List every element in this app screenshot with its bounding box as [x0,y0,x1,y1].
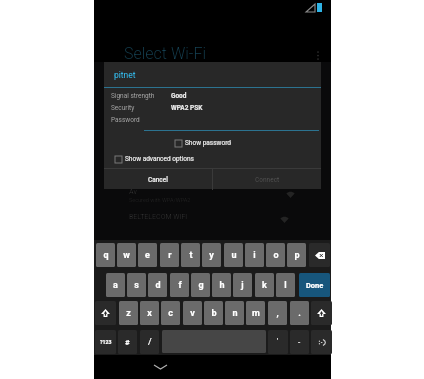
button[interactable]: Backspace [309,243,330,267]
button[interactable]: - [290,330,309,354]
staticText: m [252,308,260,319]
staticText: y [209,250,214,261]
staticText: o [273,250,279,261]
button[interactable]: Shift [311,301,332,325]
staticText: q [103,250,109,261]
staticText: Show password [185,139,231,147]
staticText: , [276,308,279,319]
button[interactable]: Show advanced options [115,155,194,163]
button[interactable]: Av [94,186,331,211]
staticText: n [232,308,238,319]
button[interactable]: ' [268,330,288,354]
button[interactable]: n [225,301,244,325]
button[interactable]: d [148,273,167,297]
button[interactable]: t [181,243,200,267]
staticText: g [198,280,204,291]
staticText: s [134,280,139,291]
button[interactable]: a [106,273,125,297]
button[interactable]: g [191,273,210,297]
staticText: Secured with WPA/WPA2 [129,197,191,203]
staticText: ?123 [100,339,112,345]
button[interactable]: p [287,243,306,267]
staticText: . [298,308,301,319]
button[interactable]: j [233,273,252,297]
staticText: f [178,280,182,291]
button[interactable]: Shift [95,301,116,325]
button[interactable]: h [212,273,231,297]
staticText: Show advanced options [125,155,194,163]
staticText: h [219,280,225,291]
button[interactable]: f [170,273,189,297]
staticText: k [262,280,267,291]
button[interactable]: Emoticons [311,330,332,354]
staticText: e [145,250,150,261]
staticText: l [284,280,287,291]
staticText: u [231,250,237,261]
staticText: x [147,308,152,319]
staticText: Select Wi-Fi [124,44,207,63]
staticText: # [125,338,130,347]
button[interactable]: Hide keyboard [146,355,174,379]
staticText: pitnet [114,70,136,80]
staticText: Av [129,188,137,196]
button[interactable]: s [127,273,146,297]
staticText: Good [171,92,187,100]
staticText: Security [111,104,135,112]
button[interactable]: Connect [213,169,321,190]
staticText: w [123,250,130,261]
staticText: / [148,337,152,348]
staticText: Password [111,116,140,124]
button[interactable]: c [161,301,180,325]
button[interactable]: Show password [175,139,231,147]
button[interactable]: m [246,301,265,325]
button[interactable]: . [290,301,309,325]
staticText: ' [277,336,279,345]
staticText: Signal strength [111,92,155,100]
staticText: Cancel [148,176,168,184]
staticText: v [190,308,195,319]
staticText: j [241,280,244,291]
button[interactable]: BELTELECOM WIFI [94,211,331,233]
staticText: WPA2 PSK [171,104,203,112]
button[interactable]: x [140,301,159,325]
staticText: Connect [255,176,280,184]
staticText: d [155,280,161,291]
button[interactable]: z [119,301,138,325]
button[interactable]: i [245,243,264,267]
button[interactable]: u [224,243,243,267]
button[interactable]: Input method [118,330,137,354]
staticText: - [298,338,301,347]
staticText: a [113,280,118,291]
button[interactable]: o [266,243,285,267]
staticText: c [168,308,173,319]
button[interactable]: r [160,243,179,267]
button[interactable]: b [204,301,223,325]
staticText: Done [306,281,324,290]
staticText: b [211,308,217,319]
button[interactable]: y [202,243,221,267]
button[interactable]: Done [299,273,330,297]
button[interactable]: l [276,273,295,297]
button[interactable]: e [138,243,157,267]
button[interactable]: q [96,243,115,267]
button[interactable]: ?123 [95,330,116,354]
staticText: t [189,250,193,261]
button[interactable]: / [140,330,159,354]
staticText: r [168,250,172,261]
button[interactable]: w [117,243,136,267]
button[interactable]: , [268,301,287,325]
button[interactable]: Cancel [104,169,212,190]
staticText: p [294,250,300,261]
button[interactable]: v [183,301,202,325]
staticText: z [126,308,131,319]
staticText: i [253,250,256,261]
button[interactable]: More options [310,47,326,63]
button[interactable]: k [255,273,274,297]
staticText: BELTELECOM WIFI [129,213,188,221]
